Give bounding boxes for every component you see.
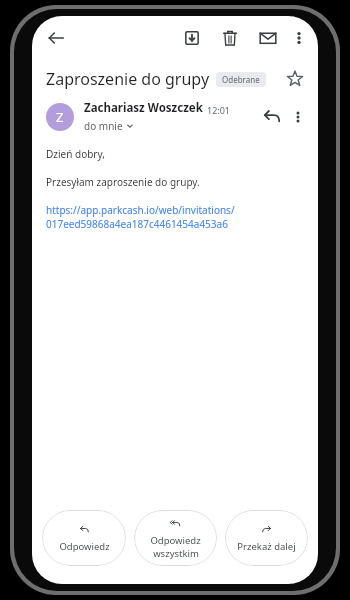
button[interactable]: More options xyxy=(288,27,310,49)
staticText: 12:01 xyxy=(207,104,231,116)
button[interactable]: Odebrane xyxy=(216,72,266,87)
button[interactable]: Back xyxy=(42,24,70,52)
staticText: wszystkim xyxy=(153,547,199,560)
staticText: Przekaż dalej xyxy=(237,540,296,553)
staticText: do mnie xyxy=(84,119,123,133)
staticText: Zachariasz Woszczek xyxy=(84,100,203,116)
staticText: Zaproszenie do grupy xyxy=(46,68,210,90)
button[interactable]: Reply xyxy=(260,105,284,129)
button[interactable]: Sender avatar xyxy=(46,103,74,131)
staticText: Dzień dobry, xyxy=(46,147,105,161)
button[interactable]: do mnie xyxy=(84,119,134,133)
button[interactable]: Delete xyxy=(216,24,244,52)
button[interactable]: More options for message xyxy=(288,107,308,127)
staticText: Z xyxy=(56,108,64,126)
staticText: 017eed59868a4ea187c4461454a453a6 xyxy=(46,217,228,231)
staticText: Odpowiedz xyxy=(59,540,110,553)
staticText: Odpowiedz xyxy=(150,534,201,547)
staticText: https://app.parkcash.io/web/invitations/ xyxy=(46,203,235,217)
staticText: Przesyłam zaproszenie do grupy. xyxy=(46,175,200,189)
button[interactable]: Przekaż dalej xyxy=(225,510,308,566)
button[interactable]: Archive xyxy=(178,24,206,52)
button[interactable]: Odpowiedz xyxy=(134,510,217,566)
staticText: Odebrane xyxy=(222,74,260,85)
button[interactable]: Star xyxy=(282,66,308,92)
button[interactable]: https://app.parkcash.io/web/invitations/ xyxy=(46,203,235,231)
button[interactable]: Mark unread xyxy=(254,24,282,52)
button[interactable]: Odpowiedz xyxy=(42,510,126,566)
